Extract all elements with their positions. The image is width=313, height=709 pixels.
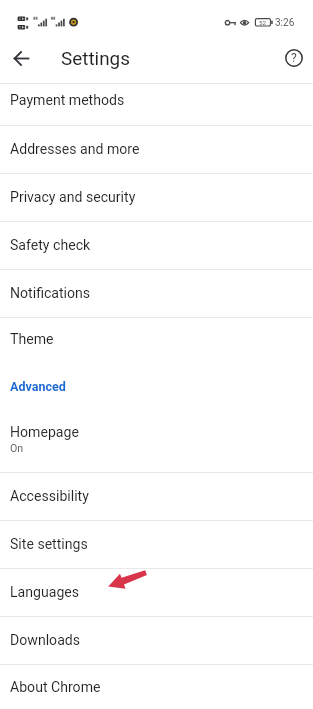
- staticText: Advanced: [10, 379, 66, 394]
- button[interactable]: Safety check: [0, 222, 313, 270]
- staticText: Site settings: [10, 536, 88, 553]
- staticText: Privacy and security: [10, 189, 136, 206]
- staticText: 3:26: [275, 17, 295, 29]
- button[interactable]: Languages: [0, 569, 313, 617]
- staticText: Notifications: [10, 285, 91, 302]
- staticText: Payment methods: [10, 92, 125, 109]
- button[interactable]: Site settings: [0, 521, 313, 569]
- button[interactable]: Payment methods: [0, 84, 313, 126]
- button[interactable]: Help and feedback: [275, 32, 313, 84]
- button[interactable]: Theme: [0, 318, 313, 366]
- button[interactable]: Back: [0, 32, 42, 84]
- staticText: Homepage: [10, 424, 79, 441]
- button[interactable]: Notifications: [0, 270, 313, 318]
- staticText: On: [10, 442, 24, 454]
- staticText: Settings: [61, 47, 130, 69]
- staticText: 52: [259, 19, 266, 26]
- button[interactable]: Privacy and security: [0, 174, 313, 222]
- staticText: About Chrome: [10, 679, 101, 696]
- button[interactable]: About Chrome: [0, 665, 313, 709]
- staticText: Downloads: [10, 632, 81, 649]
- button[interactable]: Addresses and more: [0, 126, 313, 174]
- staticText: Accessibility: [10, 488, 89, 505]
- staticText: Languages: [10, 584, 80, 601]
- staticText: Safety check: [10, 237, 91, 254]
- staticText: Theme: [10, 331, 54, 348]
- button[interactable]: Homepage: [0, 414, 313, 473]
- staticText: Addresses and more: [10, 141, 140, 158]
- button[interactable]: Downloads: [0, 617, 313, 665]
- button[interactable]: Accessibility: [0, 473, 313, 521]
- staticText: ?: [291, 51, 297, 65]
